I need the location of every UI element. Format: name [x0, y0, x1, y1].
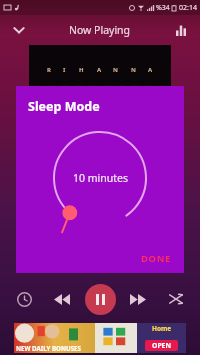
staticText: NEW DAILY BONUSES — [16, 344, 81, 352]
button[interactable]: Collapse — [5, 16, 33, 44]
button[interactable]: Next — [123, 284, 153, 314]
staticText: I — [63, 66, 67, 74]
staticText: N — [113, 66, 119, 74]
staticText: R — [47, 66, 52, 74]
staticText: N — [131, 66, 137, 74]
button[interactable]: Shuffle — [161, 284, 191, 314]
staticText: OPEN — [152, 341, 171, 350]
staticText: Sleep Mode — [28, 98, 100, 115]
staticText: Home — [152, 324, 172, 333]
staticText: %34 — [156, 3, 170, 13]
button[interactable]: Previous — [47, 284, 77, 314]
staticText: 02:14 — [179, 3, 197, 13]
button[interactable]: 10 minutes — [49, 127, 151, 229]
button[interactable]: DONE — [133, 247, 179, 270]
staticText: 10 minutes — [73, 171, 128, 185]
button[interactable]: NEW DAILY BONUSES — [14, 323, 186, 353]
button[interactable]: Sleep timer — [9, 284, 39, 314]
staticText: A — [148, 66, 153, 74]
staticText: H — [79, 66, 85, 74]
staticText: Now Playing — [69, 23, 131, 37]
button[interactable]: Pause — [85, 284, 116, 315]
button[interactable]: OPEN — [145, 340, 178, 351]
button[interactable]: Equalizer — [168, 17, 194, 43]
staticText: DONE — [141, 252, 171, 265]
staticText: A — [97, 66, 102, 74]
